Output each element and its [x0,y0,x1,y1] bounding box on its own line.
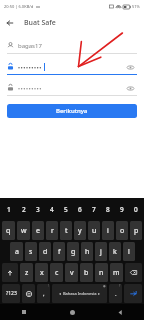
button[interactable]: 6 [73,198,87,220]
button[interactable]: 3 [31,198,45,220]
button[interactable]: f [53,242,65,261]
button[interactable] [125,263,142,282]
button[interactable]: bagas17 [7,38,137,54]
button[interactable]: d [39,242,51,261]
staticText: l [128,247,130,257]
staticText: 6 [78,205,82,214]
button[interactable]: w [17,221,30,240]
staticText: q [6,226,11,236]
staticText: 2 [22,205,26,214]
staticText: i [107,226,109,236]
staticText: r [51,226,54,236]
staticText: c [55,268,59,278]
button[interactable]: 2 [16,198,31,220]
button[interactable]: 1 [1,198,16,220]
staticText: ! [48,284,49,288]
staticText: k [113,247,117,257]
button[interactable]: k [109,242,121,261]
staticText: x [40,268,44,278]
button[interactable]: 5 [59,198,73,220]
staticText: b [84,268,89,278]
button[interactable]: j [95,242,107,261]
button[interactable]: q [2,221,15,240]
button[interactable]: Show password [123,81,137,95]
button[interactable]: s [25,242,37,261]
button[interactable]: y [74,221,86,240]
button[interactable]: Show password [7,80,137,96]
button[interactable]: i [102,221,114,240]
staticText: 3 [36,205,40,214]
button[interactable]: 7 [87,198,101,220]
staticText: , [43,290,45,298]
button[interactable]: Back [96,304,144,320]
staticText: o [120,226,125,236]
staticText: e [36,226,40,236]
button[interactable]: Show password [123,60,137,74]
staticText: j [100,247,102,257]
button[interactable]: Back [0,13,20,33]
button[interactable]: x [35,263,48,282]
staticText: 20:50 | 6.0KB/d [4,4,34,9]
staticText: f [58,247,61,257]
button[interactable]: 9 [115,198,129,220]
button[interactable]: e [32,221,44,240]
staticText: u [92,226,97,236]
staticText: a [15,247,19,257]
button[interactable] [124,284,142,303]
button[interactable]: l [123,242,135,261]
button[interactable] [22,284,35,303]
button[interactable]: t [60,221,72,240]
button[interactable]: r [46,221,58,240]
staticText: . [115,290,117,298]
button[interactable]: Home [48,304,96,320]
button[interactable]: . [109,284,122,303]
button[interactable]: 8 [101,198,115,220]
button[interactable]: n [95,263,108,282]
staticText: h [85,247,90,257]
button[interactable]: g [67,242,79,261]
button[interactable]: h [81,242,93,261]
staticText: y [78,226,82,236]
staticText: ?123 [6,290,17,297]
staticText: s [29,247,33,257]
button[interactable]: u [88,221,100,240]
staticText: ? [119,284,121,288]
staticText: w [21,226,27,236]
button[interactable]: 4 [45,198,59,220]
staticText: d [43,247,48,257]
staticText: 1 [7,205,11,214]
button[interactable]: Show password [7,59,137,75]
staticText: 7 [92,205,96,214]
button[interactable]: m [110,263,123,282]
button[interactable]: a [10,242,23,261]
button[interactable]: b [80,263,93,282]
staticText: p [134,226,139,236]
staticText: Buat Safe [24,18,56,28]
button[interactable]: , [37,284,50,303]
button[interactable]: o [116,221,128,240]
staticText: 8 [106,205,110,214]
button[interactable] [2,263,18,282]
staticText: 0 [134,205,138,214]
staticText: Bahasa Indonesia [63,291,97,296]
staticText: z [25,268,29,278]
button[interactable]: Berikutnya [7,104,137,118]
button[interactable]: ◂ [52,284,107,303]
button[interactable]: v [65,263,78,282]
staticText: ◂ [59,291,62,296]
button[interactable]: 0 [129,198,143,220]
staticText: 51% [132,4,140,9]
button[interactable]: ?123 [2,284,20,303]
staticText: bagas17 [18,42,42,50]
staticText: g [71,247,76,257]
staticText: v [70,268,74,278]
staticText: ▸ [98,291,101,296]
staticText: 5 [64,205,68,214]
button[interactable]: z [20,263,33,282]
button[interactable]: Recents [0,304,48,320]
button[interactable]: c [50,263,63,282]
staticText: Berikutnya [56,107,88,115]
button[interactable]: p [130,221,142,240]
staticText: 9 [120,205,124,214]
staticText: ● [103,284,106,287]
